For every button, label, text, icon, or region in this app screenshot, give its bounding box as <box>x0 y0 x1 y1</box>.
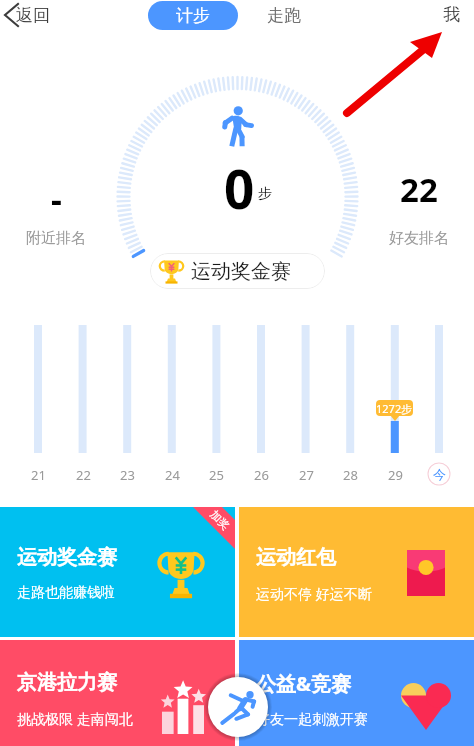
staticText: 27 <box>299 466 314 484</box>
staticText: 运动奖金赛 <box>191 259 291 284</box>
staticText: 运动奖金赛 <box>17 545 117 570</box>
staticText: 29 <box>388 466 403 484</box>
staticText: 计步 <box>176 5 210 26</box>
button[interactable]: 返回 <box>0 0 62 30</box>
button[interactable]: 计步 <box>148 1 238 30</box>
staticText: 运动不停 好运不断 <box>256 584 372 603</box>
staticText: - <box>51 176 62 222</box>
staticText: 24 <box>165 466 180 484</box>
staticText: 0 <box>224 152 255 224</box>
staticText: 加奖 <box>207 507 233 533</box>
button[interactable]: 走跑 <box>253 1 314 30</box>
staticText: 21 <box>31 466 46 484</box>
button[interactable]: - <box>6 172 106 252</box>
staticText: 好友一起刺激开赛 <box>256 711 368 729</box>
staticText: 返回 <box>16 5 50 26</box>
staticText: 走跑 <box>267 5 301 26</box>
staticText: 京港拉力赛 <box>17 670 117 695</box>
button[interactable]: 运动奖金赛 <box>0 507 235 637</box>
button[interactable]: 京港拉力赛 <box>0 640 235 746</box>
staticText: 我 <box>443 4 460 25</box>
staticText: 28 <box>343 466 358 484</box>
staticText: 22 <box>76 466 91 484</box>
staticText: 步 <box>258 185 272 203</box>
button[interactable]: 我 <box>428 0 474 28</box>
staticText: 好友排名 <box>389 229 449 248</box>
button[interactable]: 运动奖金赛 <box>150 253 325 289</box>
staticText: 运动红包 <box>256 545 336 570</box>
staticText: 走路也能赚钱啦 <box>17 584 115 602</box>
button[interactable]: 运动红包 <box>239 507 474 637</box>
staticText: 今 <box>433 466 446 482</box>
staticText: 公益&竞赛 <box>256 670 351 697</box>
staticText: 23 <box>120 466 135 484</box>
staticText: 26 <box>254 466 269 484</box>
staticText: 25 <box>209 466 224 484</box>
button[interactable]: 22 <box>369 172 469 252</box>
button[interactable]: 公益&竞赛 <box>239 640 474 746</box>
staticText: 附近排名 <box>26 229 86 248</box>
button[interactable]: Start running <box>208 677 268 737</box>
staticText: 挑战极限 走南闯北 <box>17 709 133 728</box>
button[interactable]: 今 <box>427 462 451 486</box>
staticText: 1272步 <box>376 401 413 416</box>
staticText: 22 <box>400 167 438 212</box>
